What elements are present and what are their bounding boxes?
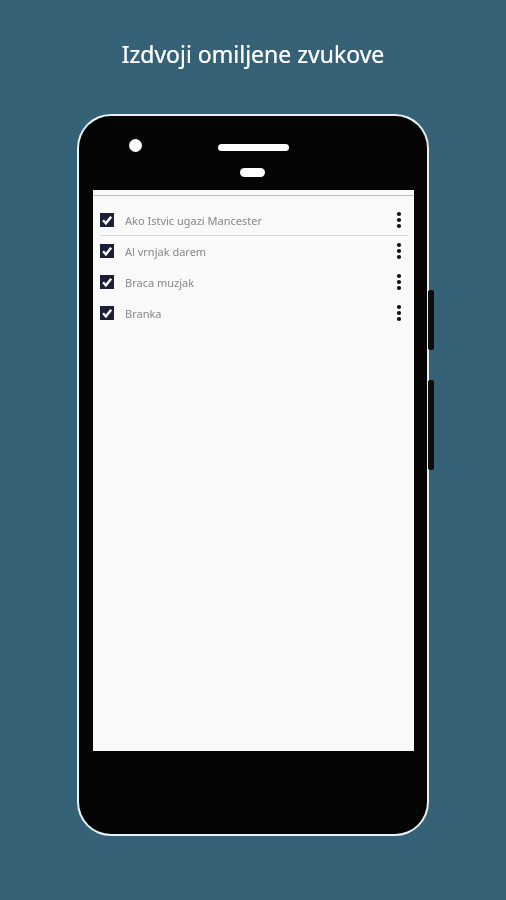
button[interactable]: More options: [390, 237, 408, 265]
staticText: Ako Istvic ugazi Mancester: [125, 213, 390, 228]
button[interactable]: Toggle Braca muzjak: [100, 275, 114, 289]
button[interactable]: Toggle Al vrnjak darem: [100, 244, 114, 258]
button[interactable]: Toggle Ako Istvic ugazi Mancester: [100, 213, 114, 227]
staticText: Braca muzjak: [125, 275, 390, 290]
button[interactable]: Toggle Branka: [93, 298, 414, 328]
staticText: Izdvoji omiljene zvukove: [0, 38, 506, 69]
button[interactable]: More options: [390, 299, 408, 327]
button[interactable]: Toggle Ako Istvic ugazi Mancester: [93, 205, 414, 235]
staticText: Al vrnjak darem: [125, 244, 390, 259]
button[interactable]: Toggle Branka: [100, 306, 114, 320]
button[interactable]: More options: [390, 206, 408, 234]
button[interactable]: More options: [390, 268, 408, 296]
staticText: Branka: [125, 306, 390, 321]
button[interactable]: Toggle Al vrnjak darem: [93, 236, 414, 266]
button[interactable]: Toggle Braca muzjak: [93, 267, 414, 297]
